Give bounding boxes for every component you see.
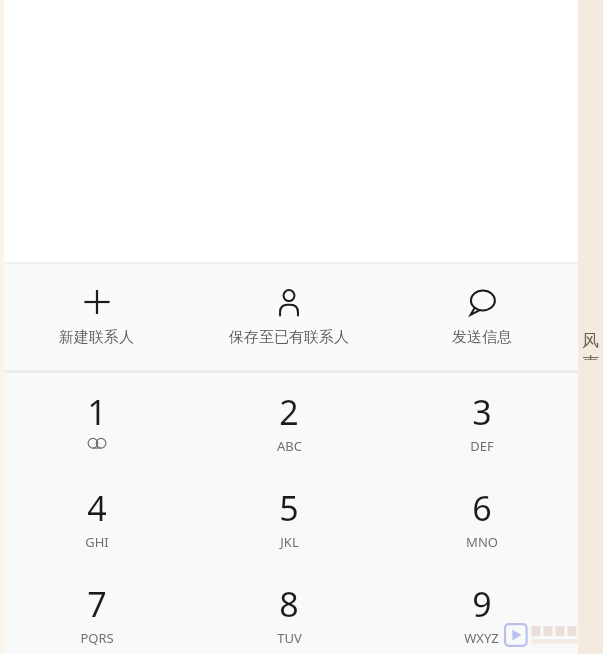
staticText: JKL: [280, 533, 299, 551]
staticText: 6: [472, 485, 492, 531]
staticText: 3: [472, 389, 492, 435]
staticText: GHI: [85, 533, 109, 551]
staticText: MNO: [466, 533, 498, 551]
button[interactable]: 7: [0, 565, 193, 654]
button[interactable]: Send message: [385, 264, 578, 370]
button[interactable]: 3: [385, 373, 578, 469]
staticText: WXYZ: [464, 629, 499, 647]
staticText: 4: [87, 485, 107, 531]
staticText: 1: [87, 389, 107, 435]
staticText: 2: [279, 389, 299, 435]
staticText: 9: [472, 581, 492, 627]
staticText: 8: [279, 581, 299, 627]
button[interactable]: Save to existing contact: [193, 264, 385, 370]
staticText: 5: [279, 485, 299, 531]
staticText: 风声: [578, 330, 603, 360]
staticText: DEF: [470, 437, 494, 455]
staticText: 新建联系人: [59, 328, 134, 347]
button[interactable]: 5: [193, 469, 385, 565]
button[interactable]: 6: [385, 469, 578, 565]
staticText: ABC: [277, 437, 302, 455]
button[interactable]: 2: [193, 373, 385, 469]
staticText: 7: [87, 581, 107, 627]
button[interactable]: New contact: [0, 264, 193, 370]
button[interactable]: 8: [193, 565, 385, 654]
staticText: TUV: [277, 629, 302, 647]
staticText: 发送信息: [452, 328, 512, 347]
staticText: 保存至已有联系人: [229, 328, 349, 347]
staticText: PQRS: [80, 629, 114, 647]
button[interactable]: 9: [385, 565, 578, 654]
button[interactable]: 4: [0, 469, 193, 565]
button[interactable]: 1: [0, 373, 193, 469]
